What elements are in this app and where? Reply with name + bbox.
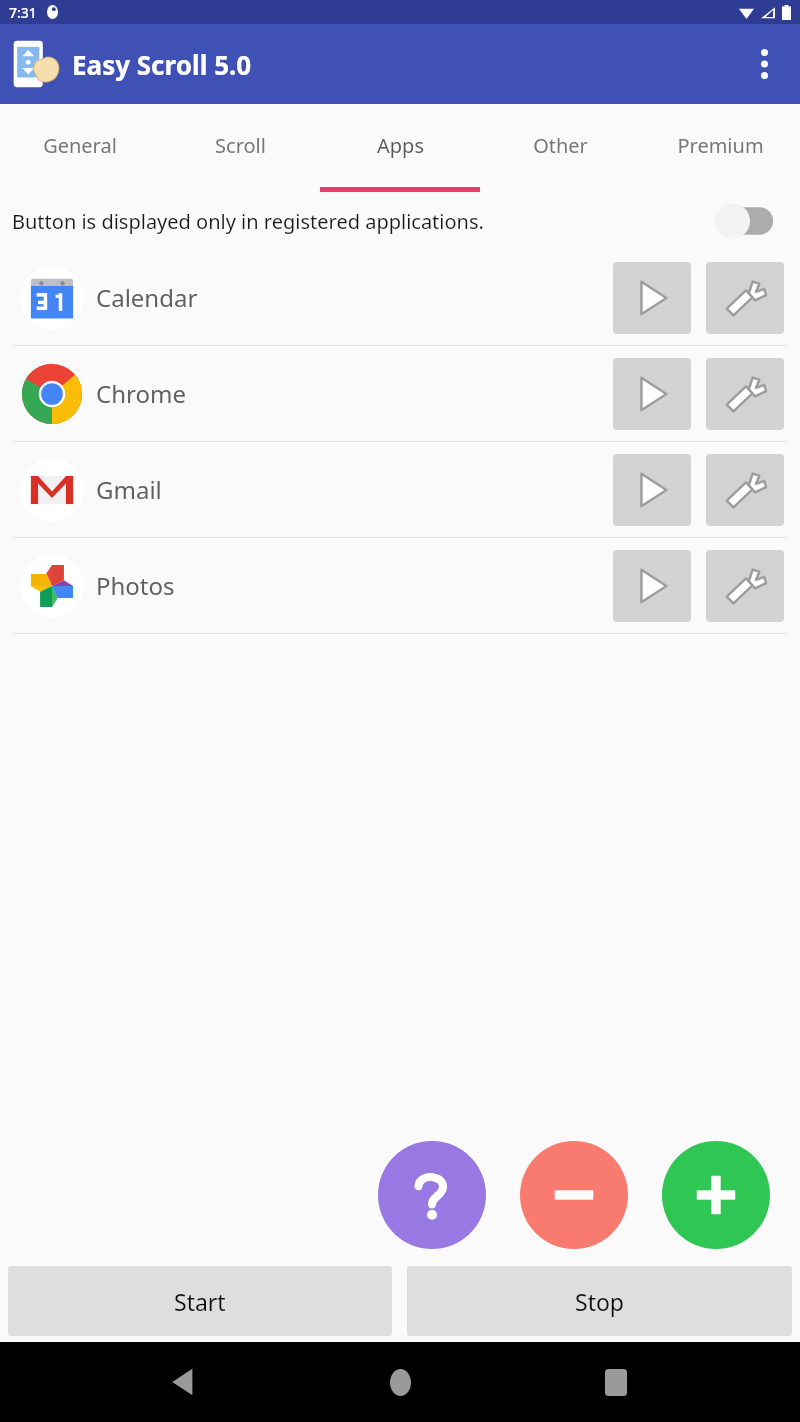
button[interactable]: Gmail — [0, 442, 800, 537]
button[interactable]: Settings for Chrome — [706, 358, 784, 430]
other: Easy Scroll icon — [12, 35, 68, 93]
button[interactable]: Premium — [640, 104, 800, 187]
button[interactable]: Back — [152, 1350, 216, 1414]
button[interactable]: Photos — [0, 538, 800, 633]
button[interactable]: Settings for Gmail — [706, 454, 784, 526]
button[interactable]: Settings for Photos — [706, 550, 784, 622]
button[interactable]: Settings for Calendar — [706, 262, 784, 334]
button[interactable]: Decrease — [520, 1141, 628, 1249]
staticText: Gmail — [96, 473, 162, 506]
staticText: Start — [174, 1286, 226, 1317]
staticText: General — [43, 132, 117, 159]
staticText: Scroll — [215, 132, 266, 159]
button[interactable]: Other — [480, 104, 640, 187]
staticText: Apps — [377, 132, 424, 159]
staticText: Other — [533, 132, 588, 159]
button[interactable]: Home — [368, 1350, 432, 1414]
button[interactable]: Apps — [320, 104, 480, 187]
button[interactable]: Help — [378, 1141, 486, 1249]
staticText: Calendar — [96, 281, 198, 314]
button[interactable]: Run Calendar — [613, 262, 691, 334]
button[interactable]: Run Chrome — [613, 358, 691, 430]
button[interactable]: General — [0, 104, 160, 187]
staticText: Easy Scroll 5.0 — [72, 47, 252, 82]
button[interactable]: Run Gmail — [613, 454, 691, 526]
button[interactable]: Scroll — [160, 104, 320, 187]
staticText: 7:31 — [9, 3, 37, 22]
button[interactable]: More options — [740, 40, 788, 88]
button[interactable]: Increase — [662, 1141, 770, 1249]
button[interactable]: Registered applications only toggle — [708, 199, 782, 243]
button[interactable]: Start — [8, 1266, 392, 1336]
staticText: Stop — [575, 1286, 624, 1317]
staticText: Button is displayed only in registered a… — [12, 208, 484, 235]
button[interactable]: Recent apps — [584, 1350, 648, 1414]
button[interactable]: Run Photos — [613, 550, 691, 622]
button[interactable]: Stop — [407, 1266, 792, 1336]
staticText: Premium — [677, 132, 764, 159]
button[interactable]: Chrome — [0, 346, 800, 441]
button[interactable]: Calendar — [0, 250, 800, 345]
staticText: Chrome — [96, 377, 186, 410]
staticText: Photos — [96, 569, 175, 602]
